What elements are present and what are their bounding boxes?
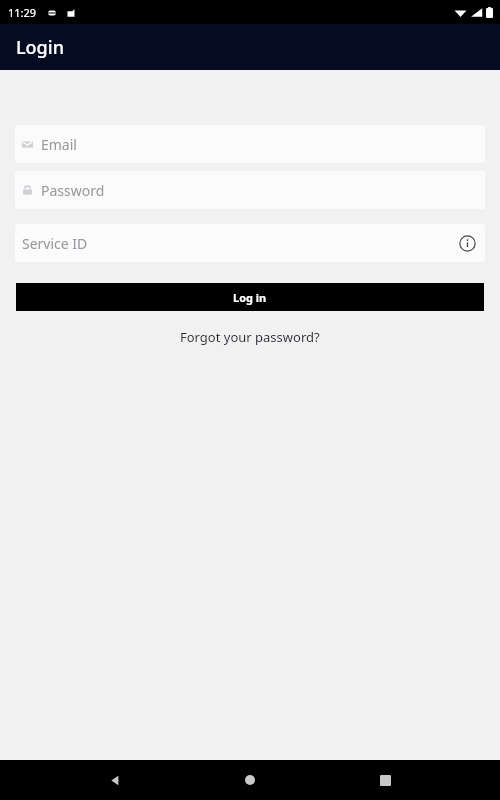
button[interactable]: Forgot your password? [0, 328, 500, 346]
button[interactable]: Password [15, 171, 485, 209]
staticText: Password [41, 181, 478, 200]
button[interactable]: Log in [16, 283, 484, 311]
button[interactable]: Home [230, 760, 270, 800]
button[interactable]: Recent apps [365, 760, 405, 800]
button[interactable]: Service ID [15, 224, 485, 262]
button[interactable]: Email [15, 125, 485, 163]
staticText: 11:29 [8, 5, 37, 20]
staticText: Forgot your password? [180, 328, 320, 346]
button[interactable]: Service ID information [456, 232, 478, 254]
button[interactable]: Back [95, 760, 135, 800]
staticText: Service ID [22, 234, 456, 253]
staticText: Log in [233, 290, 267, 305]
staticText: Email [41, 135, 478, 154]
staticText: Login [16, 35, 64, 60]
